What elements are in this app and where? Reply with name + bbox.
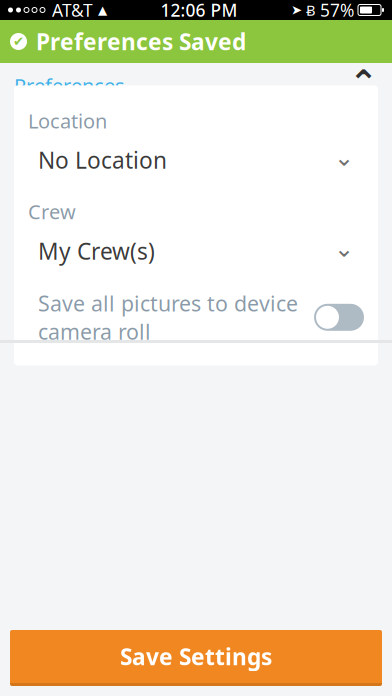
- staticText: ✔: [13, 34, 24, 49]
- staticText: My Crew(s): [38, 236, 155, 266]
- staticText: ⌄: [334, 144, 354, 171]
- staticText: Save Settings: [120, 641, 272, 671]
- staticText: Preferences: [14, 72, 125, 99]
- button[interactable]: Save all pictures to device camera roll: [314, 304, 364, 331]
- staticText: AT&T: [52, 0, 93, 21]
- button[interactable]: Crew: [14, 198, 378, 267]
- button[interactable]: Preferences: [0, 63, 392, 108]
- staticText: Preferences Saved: [36, 26, 246, 56]
- staticText: Location: [28, 107, 107, 134]
- staticText: No Location: [38, 145, 167, 175]
- staticText: Save all pictures to device camera roll: [38, 289, 298, 346]
- staticText: ⌄: [334, 235, 354, 262]
- staticText: ▲: [98, 3, 107, 17]
- staticText: ➤: [291, 2, 302, 17]
- button[interactable]: Location: [14, 107, 378, 176]
- button[interactable]: Save Settings: [10, 630, 382, 686]
- staticText: ⌃: [349, 63, 378, 102]
- staticText: Crew: [28, 198, 76, 225]
- staticText: 57%: [320, 0, 354, 21]
- staticText: Ƀ: [306, 0, 316, 20]
- staticText: 12:06 PM: [160, 0, 237, 21]
